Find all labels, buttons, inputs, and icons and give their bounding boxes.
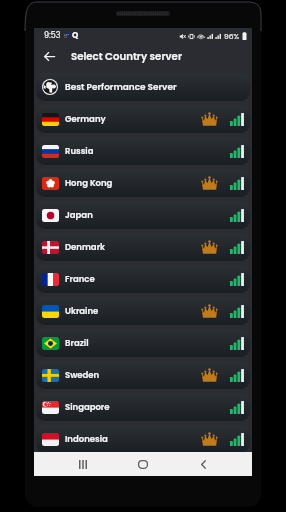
staticText: Denmark bbox=[65, 241, 106, 253]
staticText: Q bbox=[72, 30, 79, 41]
staticText: Indonesia bbox=[65, 433, 108, 445]
staticText: 96% bbox=[224, 31, 240, 41]
button[interactable]: Best Performance Server bbox=[36, 73, 250, 101]
button[interactable]: France bbox=[36, 265, 250, 293]
staticText: Brazil bbox=[65, 337, 89, 349]
staticText: Sweden bbox=[65, 369, 100, 381]
staticText: Best Performance Server bbox=[65, 81, 177, 93]
button[interactable]: Recent apps bbox=[69, 452, 97, 476]
button[interactable]: Russia bbox=[36, 137, 250, 165]
button[interactable]: Back bbox=[38, 45, 60, 67]
button[interactable]: Denmark bbox=[36, 233, 250, 261]
button[interactable]: Ukraine bbox=[36, 297, 250, 325]
button[interactable]: Germany bbox=[36, 105, 250, 133]
staticText: France bbox=[65, 273, 95, 285]
staticText: Select Country server bbox=[71, 49, 183, 63]
button[interactable]: Home bbox=[129, 452, 157, 476]
staticText: Ukraine bbox=[65, 305, 99, 317]
button[interactable]: Brazil bbox=[36, 329, 250, 357]
staticText: Japan bbox=[65, 209, 93, 221]
button[interactable]: Japan bbox=[36, 201, 250, 229]
button[interactable]: Indonesia bbox=[36, 425, 250, 453]
button[interactable]: Singapore bbox=[36, 393, 250, 421]
staticText: Hong Kong bbox=[65, 177, 113, 189]
button[interactable]: Sweden bbox=[36, 361, 250, 389]
staticText: Singapore bbox=[65, 401, 110, 413]
button[interactable]: Hong Kong bbox=[36, 169, 250, 197]
button[interactable]: Back bbox=[189, 452, 217, 476]
staticText: Russia bbox=[65, 145, 94, 157]
staticText: Germany bbox=[65, 113, 106, 125]
staticText: 9:53 bbox=[44, 30, 61, 41]
